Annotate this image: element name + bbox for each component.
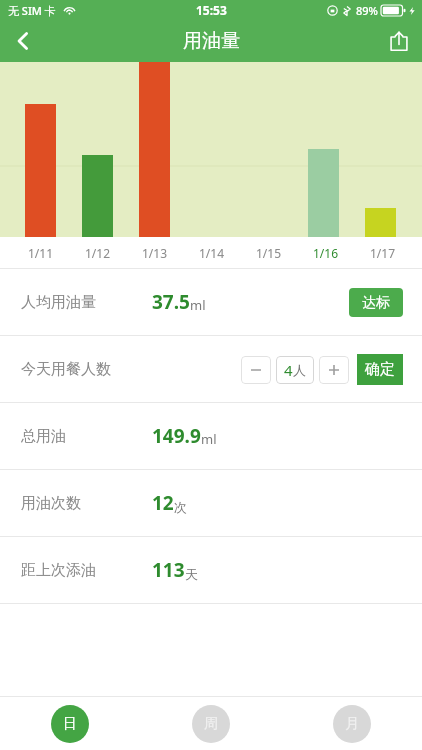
staticText: ml [201, 430, 217, 448]
staticText: 用油量 [183, 29, 240, 53]
staticText: 113 [152, 557, 185, 583]
button[interactable]: 周 [192, 705, 230, 743]
staticText: 1/12 [85, 245, 111, 261]
staticText: 总用油 [21, 427, 66, 446]
button[interactable]: 人均用油量 [0, 269, 422, 335]
staticText: 用油次数 [21, 494, 81, 513]
staticText: 12 [152, 490, 174, 516]
staticText: 89% [356, 3, 378, 18]
staticText: 149.9 [152, 423, 201, 449]
staticText: 1/11 [28, 245, 54, 261]
staticText: 达标 [362, 294, 390, 312]
staticText: 1/14 [199, 245, 225, 261]
staticText: 37.5 [152, 289, 190, 315]
button[interactable]: 日 [51, 705, 89, 743]
staticText: 15:53 [196, 2, 227, 18]
button[interactable]: 确定 [357, 354, 403, 385]
staticText: 次 [174, 499, 187, 515]
staticText: 今天用餐人数 [21, 360, 111, 379]
button[interactable]: 月 [333, 705, 371, 743]
button[interactable]: 4 [276, 356, 314, 384]
staticText: 周 [204, 715, 218, 733]
staticText: ml [190, 296, 206, 314]
button[interactable]: Share [376, 20, 422, 62]
staticText: 1/17 [370, 245, 396, 261]
staticText: 1/15 [256, 245, 282, 261]
button[interactable]: 总用油 [0, 403, 422, 469]
button[interactable]: Decrease [241, 356, 271, 384]
staticText: 月 [345, 715, 359, 733]
staticText: 4 [284, 360, 293, 380]
button[interactable]: 达标 [349, 288, 403, 317]
staticText: 距上次添油 [21, 561, 96, 580]
button[interactable]: 距上次添油 [0, 537, 422, 603]
staticText: 天 [185, 566, 198, 582]
staticText: 日 [63, 715, 77, 733]
staticText: 人 [293, 362, 306, 378]
button[interactable]: 用油次数 [0, 470, 422, 536]
button[interactable]: Increase [319, 356, 349, 384]
staticText: 确定 [365, 360, 395, 379]
button[interactable]: Back [0, 20, 46, 62]
staticText: 无 SIM 卡 [8, 3, 56, 18]
staticText: 1/16 [313, 245, 339, 261]
staticText: 1/13 [142, 245, 168, 261]
staticText: 人均用油量 [21, 293, 96, 312]
